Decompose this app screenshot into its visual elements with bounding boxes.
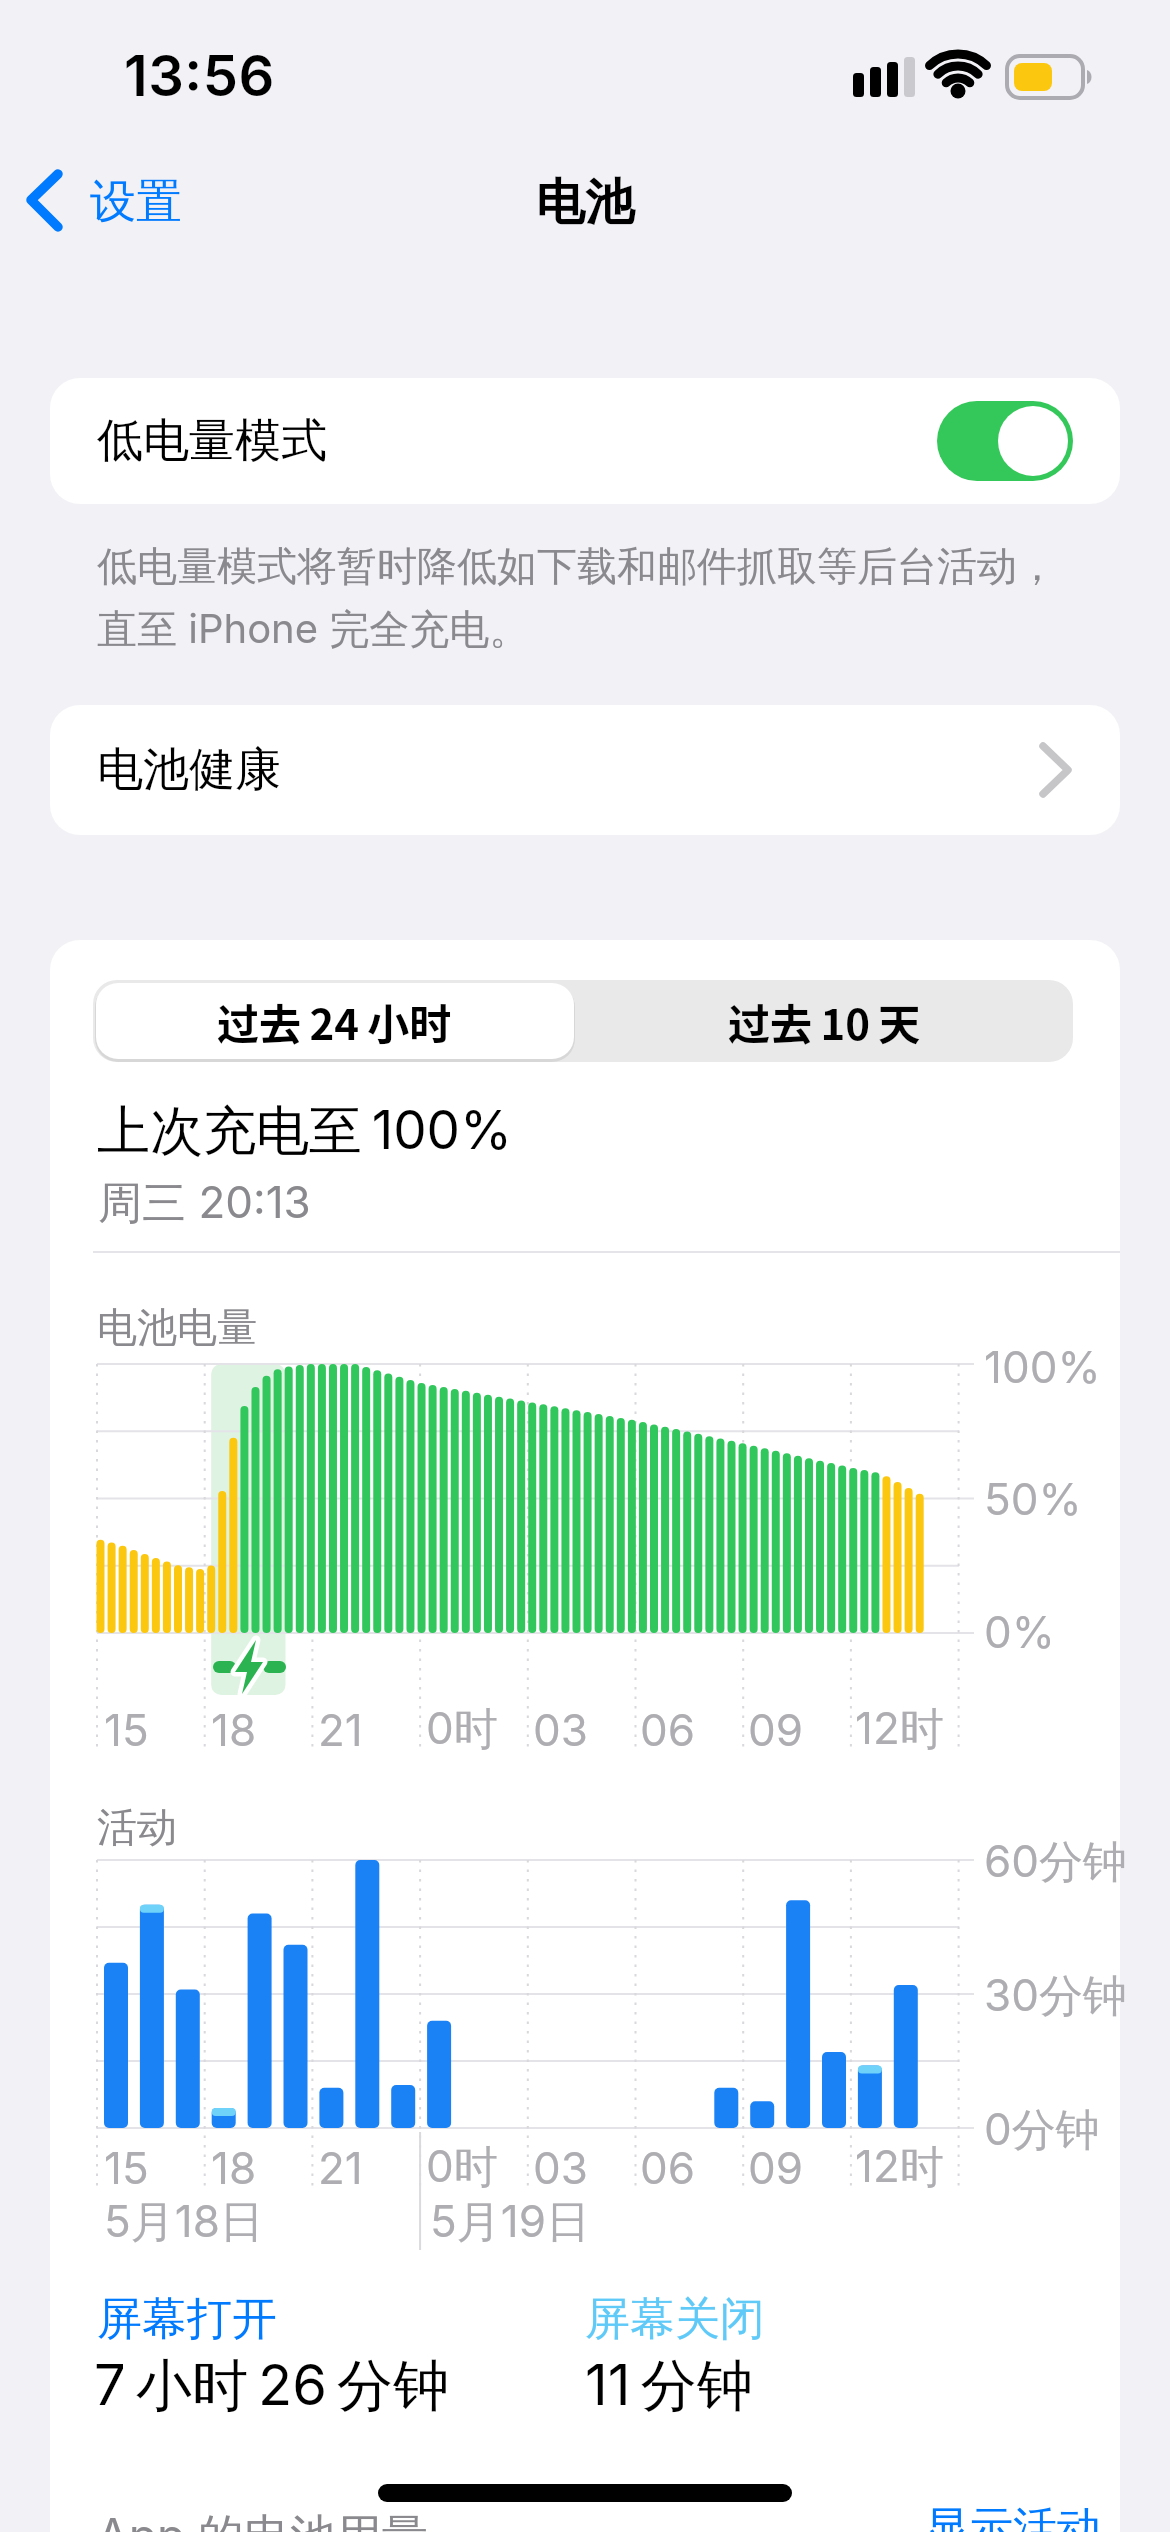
staticText: 屏幕打开 [97,2291,277,2348]
staticText: 显示活动 [925,2501,1101,2532]
staticText: 0分钟 [984,2102,1100,2158]
staticText: 5月18日 [104,2194,264,2250]
staticText: 06 [640,2141,696,2194]
staticText: 09 [748,1703,804,1756]
staticText: 15 [104,1703,149,1756]
staticText: 21 [318,2141,363,2194]
staticText: 18 [211,2141,257,2194]
staticText: 电池电量 [97,1302,257,1352]
staticText: 屏幕关闭 [585,2291,765,2348]
button[interactable] [93,980,583,1062]
staticText: 电池 [536,172,634,234]
staticText: 12时 [855,2139,944,2195]
staticText: 周三 20:13 [98,1175,311,1231]
staticText: 过去 24 小时 [217,991,452,1052]
staticText: 03 [533,2141,588,2194]
staticText: 12时 [855,1701,944,1757]
staticText: 上次充电至 100% [97,1098,513,1165]
staticText: 活动 [97,1802,177,1852]
staticText: App 的电池用量 [97,2507,429,2532]
staticText: 0时 [426,1701,498,1757]
staticText: 电池健康 [97,741,281,799]
button[interactable] [50,705,1120,835]
staticText: 30分钟 [984,1968,1127,2024]
staticText: 设置 [90,173,182,231]
staticText: 直至 iPhone 完全充电。 [97,604,530,655]
staticText: 15 [104,2141,149,2194]
staticText: 03 [533,1703,588,1756]
staticText: 60分钟 [984,1834,1128,1890]
button[interactable] [575,980,1073,1062]
staticText: 50% [984,1472,1082,1525]
staticText: 18 [211,1703,257,1756]
staticText: 11 分钟 [585,2351,753,2422]
staticText: 0时 [426,2139,498,2195]
button[interactable] [937,401,1073,481]
staticText: 低电量模式 [97,412,327,470]
button[interactable]: 显示活动 [925,2484,1101,2532]
staticText: 7 小时 26 分钟 [94,2351,450,2422]
staticText: 5月19日 [430,2194,590,2250]
staticText: 0% [984,1605,1055,1658]
button[interactable] [20,170,200,250]
staticText: 21 [318,1703,363,1756]
staticText: 09 [748,2141,804,2194]
staticText: 过去 10 天 [728,991,921,1052]
staticText: 06 [640,1703,696,1756]
staticText: 100% [984,1340,1101,1393]
staticText: 低电量模式将暂时降低如下载和邮件抓取等后台活动， [97,541,1057,591]
staticText: 13:56 [124,42,275,110]
